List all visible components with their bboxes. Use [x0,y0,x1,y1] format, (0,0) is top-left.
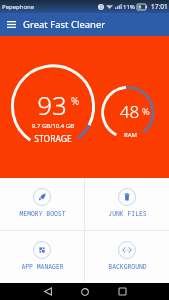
staticText: 0 [100,4,103,10]
staticText: APP MANAGER [21,262,64,271]
staticText: 93 [12,87,92,122]
staticText: % [142,105,150,118]
button[interactable]: APP MANAGER [0,231,84,271]
button[interactable]: Back [36,283,60,300]
button[interactable]: BACKGROUND [85,231,169,271]
staticText: 9.7 GB/10.4 GB [13,122,93,130]
staticText: BACKGROUND [108,262,147,271]
button[interactable]: Home [73,283,97,300]
button[interactable]: JUNK FILES [85,178,169,218]
button[interactable]: Recents [110,283,134,300]
staticText: 11% [123,3,135,11]
button[interactable]: Menu [0,13,23,36]
staticText: Pepephone [2,3,35,11]
staticText: MEMORY BOOST [19,209,66,218]
button[interactable]: MEMORY BOOST [0,178,84,218]
staticText: RAM [105,131,156,139]
staticText: STORAGE [13,133,93,145]
staticText: JUNK FILES [108,209,147,218]
staticText: 17:01 [151,2,168,11]
staticText: % [71,94,80,108]
staticText: 48 [104,100,155,123]
staticText: Great Fast Cleaner [23,18,106,31]
